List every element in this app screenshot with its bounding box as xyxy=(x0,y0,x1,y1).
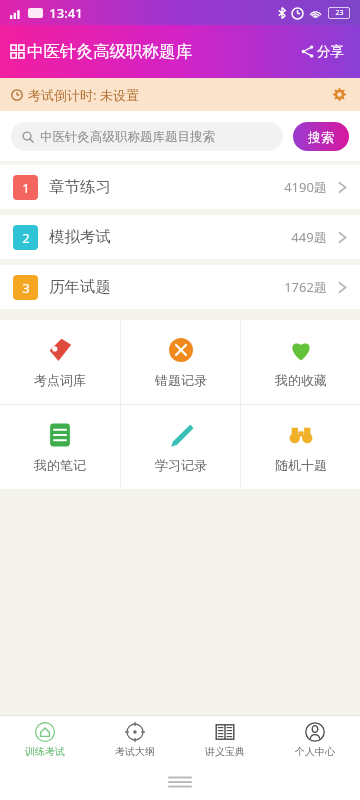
button[interactable]: 我的笔记 xyxy=(0,405,120,489)
staticText: 449题 xyxy=(291,228,327,246)
staticText: 错题记录 xyxy=(155,372,207,388)
staticText: 分享 xyxy=(317,43,344,60)
staticText: 考点词库 xyxy=(34,372,86,388)
staticText: 搜索 xyxy=(308,129,334,145)
button[interactable]: 2 xyxy=(0,215,360,259)
button[interactable]: 讲义宝典 xyxy=(180,716,270,764)
button[interactable]: 3 xyxy=(0,265,360,309)
button[interactable]: 考试倒计时: 未设置 xyxy=(0,78,360,111)
staticText: 历年试题 xyxy=(49,277,111,297)
staticText: 学习记录 xyxy=(155,457,207,473)
staticText: 4190题 xyxy=(284,178,327,196)
staticText: 2 xyxy=(22,229,30,247)
staticText: 1762题 xyxy=(284,278,327,296)
staticText: 3 xyxy=(22,279,30,297)
staticText: 章节练习 xyxy=(49,177,111,197)
staticText: 13:41 xyxy=(49,4,83,22)
button[interactable]: 考试大纲 xyxy=(90,716,180,764)
staticText: 我的笔记 xyxy=(34,457,86,473)
button[interactable]: 1 xyxy=(0,165,360,209)
button[interactable]: 中医针灸高级职称题库题目搜索 xyxy=(11,122,283,151)
staticText: 考试倒计时: 未设置 xyxy=(28,86,139,104)
button[interactable]: 随机十题 xyxy=(241,405,360,489)
button[interactable]: 个人中心 xyxy=(270,716,360,764)
staticText: 考试大纲 xyxy=(115,745,155,758)
staticText: 23 xyxy=(335,8,344,18)
button[interactable]: 分享 xyxy=(297,39,348,64)
button[interactable]: 考点词库 xyxy=(0,320,120,404)
staticText: 中医针灸高级职称题库 xyxy=(27,41,192,62)
staticText: 个人中心 xyxy=(295,745,335,758)
staticText: 讲义宝典 xyxy=(205,745,245,758)
button[interactable]: 搜索 xyxy=(293,122,349,151)
button[interactable]: 我的收藏 xyxy=(241,320,360,404)
other: Settings xyxy=(332,87,347,102)
button[interactable]: 学习记录 xyxy=(121,405,240,489)
staticText: 我的收藏 xyxy=(275,372,327,388)
staticText: 模拟考试 xyxy=(49,227,111,247)
button[interactable]: 训练考试 xyxy=(0,716,90,764)
other: Menu xyxy=(169,775,191,789)
staticText: 训练考试 xyxy=(25,745,65,758)
staticText: 中医针灸高级职称题库题目搜索 xyxy=(40,129,215,145)
staticText: 随机十题 xyxy=(275,457,327,473)
staticText: 1 xyxy=(22,179,30,197)
button[interactable]: 错题记录 xyxy=(121,320,240,404)
